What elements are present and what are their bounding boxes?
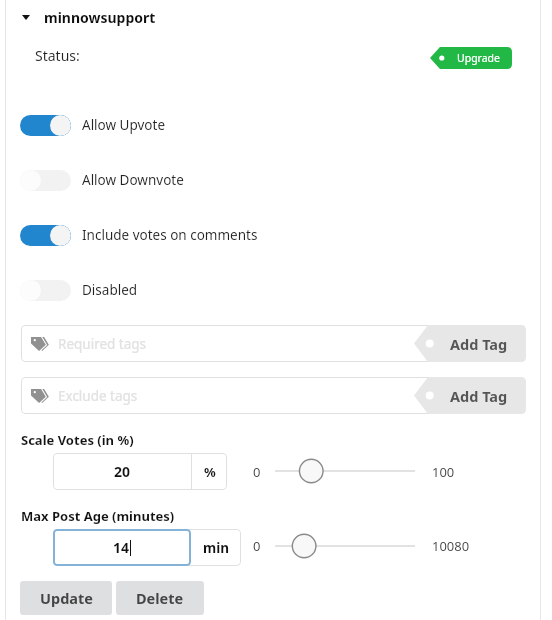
button[interactable]	[21, 377, 461, 414]
button[interactable]: Off	[20, 166, 184, 194]
staticText: 14	[113, 538, 130, 557]
staticText: minnowsupport	[44, 8, 156, 27]
staticText: Allow Upvote	[82, 116, 166, 134]
button[interactable]: On	[20, 221, 258, 249]
staticText: Add Tag	[450, 334, 508, 354]
staticText: Disabled	[82, 281, 138, 299]
staticText: Add Tag	[450, 386, 508, 406]
button[interactable]: Off	[20, 280, 71, 301]
button[interactable]: 20	[53, 453, 227, 490]
staticText: Status:	[35, 46, 80, 65]
staticText: Upgrade	[457, 51, 500, 65]
staticText: 0	[253, 463, 261, 481]
staticText: Update	[40, 588, 93, 608]
button[interactable]: Update	[20, 581, 112, 615]
staticText: Exclude tags	[58, 387, 138, 405]
button[interactable]: 14	[53, 529, 191, 566]
button[interactable]: Slider	[275, 533, 415, 559]
button[interactable]: Delete	[116, 581, 204, 615]
staticText: Max Post Age (minutes)	[21, 507, 175, 525]
button[interactable]: On	[20, 111, 166, 139]
staticText: Allow Downvote	[82, 171, 184, 189]
staticText: min	[203, 539, 229, 557]
staticText: 10080	[432, 537, 470, 555]
button[interactable]: Add Tag	[414, 325, 526, 362]
button[interactable]: Off	[20, 170, 71, 191]
staticText: Include votes on comments	[82, 226, 258, 244]
other: Collapse	[22, 15, 30, 20]
staticText: %	[204, 463, 216, 481]
staticText: 100	[432, 463, 455, 481]
staticText: Required tags	[58, 335, 147, 353]
button[interactable]: Upgrade	[430, 47, 512, 69]
button[interactable]: Slider	[275, 458, 415, 484]
staticText: 0	[253, 537, 261, 555]
staticText: Delete	[136, 588, 184, 608]
button[interactable]	[21, 325, 461, 362]
staticText: Scale Votes (in %)	[21, 431, 134, 449]
button[interactable]: On	[20, 115, 71, 136]
staticText: 20	[114, 462, 131, 481]
button[interactable]: Collapse	[22, 5, 156, 29]
button[interactable]: Off	[20, 276, 138, 304]
button[interactable]: Add Tag	[414, 377, 526, 414]
button[interactable]: On	[20, 225, 71, 246]
